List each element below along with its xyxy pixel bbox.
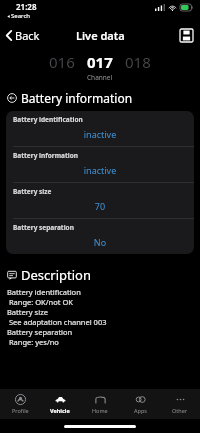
staticText: Back	[15, 28, 40, 43]
staticText: Battery size	[13, 187, 52, 196]
staticText: Channel	[87, 73, 113, 82]
button[interactable]: 018	[125, 52, 151, 72]
staticText: Battery separation	[7, 327, 73, 337]
staticText: Battery size	[7, 307, 48, 317]
staticText: Range: OK/not OK	[7, 297, 73, 307]
staticText: Apps	[134, 407, 147, 414]
staticText: Home	[92, 407, 108, 414]
staticText: Battery information	[13, 151, 78, 160]
button[interactable]: Back	[0, 25, 46, 46]
button[interactable]: Home	[80, 391, 120, 417]
button[interactable]: Battery identification	[6, 111, 194, 146]
button[interactable]: Profile	[0, 391, 40, 417]
button[interactable]: Other	[160, 391, 200, 417]
staticText: Range: yes/no	[7, 337, 59, 347]
staticText: Live data	[76, 28, 125, 43]
staticText: Vehicle	[50, 407, 70, 414]
staticText: 70	[13, 200, 187, 212]
button[interactable]: 017	[87, 52, 113, 72]
button[interactable]: Battery separation	[6, 219, 194, 254]
staticText: Battery information	[21, 90, 133, 106]
button[interactable]: Battery information	[6, 147, 194, 182]
staticText: See adaptation channel 003	[7, 317, 107, 327]
staticText: inactive	[13, 164, 187, 176]
button[interactable]: 016	[49, 52, 75, 72]
staticText: Description	[21, 266, 91, 284]
staticText: Profile	[12, 407, 29, 414]
button[interactable]: Battery size	[6, 183, 194, 218]
button[interactable]: Apps	[120, 391, 160, 417]
staticText: Battery identification	[7, 287, 81, 297]
staticText: Battery separation	[13, 223, 74, 232]
staticText: Search	[11, 12, 30, 20]
staticText: Other	[172, 407, 188, 414]
staticText: Battery identification	[13, 115, 83, 124]
staticText: 21:28	[16, 1, 37, 12]
staticText: No	[13, 236, 187, 248]
button[interactable]: Vehicle	[40, 391, 80, 417]
staticText: inactive	[13, 128, 187, 140]
button[interactable]: Save	[178, 27, 194, 43]
